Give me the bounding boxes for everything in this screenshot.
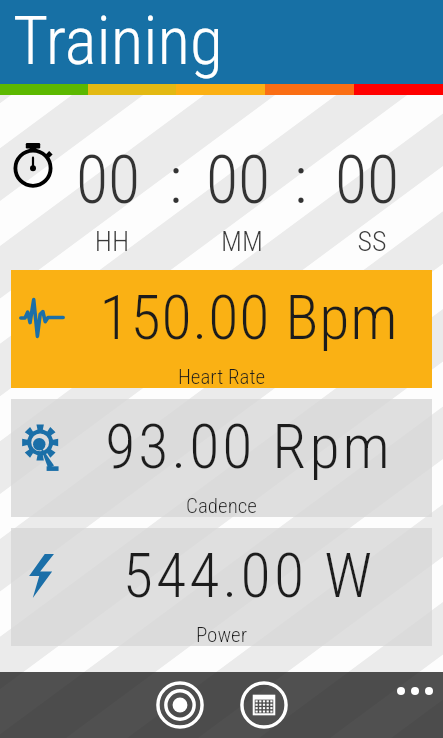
staticText: : xyxy=(294,142,308,219)
staticText: Heart Rate xyxy=(11,365,432,390)
staticText: Training xyxy=(13,1,223,80)
staticText: SS xyxy=(332,225,412,258)
staticText: 544.00 W xyxy=(65,539,433,612)
staticText: : xyxy=(169,142,183,219)
staticText: HH xyxy=(72,225,152,258)
staticText: 00 xyxy=(335,142,400,219)
staticText: 93.00 Rpm xyxy=(65,410,433,483)
button[interactable]: 93.00 Rpm xyxy=(11,399,432,517)
button[interactable]: Start recording xyxy=(151,676,209,734)
button[interactable]: Calendar xyxy=(235,676,293,734)
staticText: Power xyxy=(11,623,432,648)
button[interactable]: 544.00 W xyxy=(11,528,432,646)
button[interactable]: More options xyxy=(387,672,443,710)
button[interactable]: 150.00 Bpm xyxy=(11,270,432,388)
staticText: 00 xyxy=(206,142,271,219)
staticText: MM xyxy=(202,225,282,258)
staticText: 150.00 Bpm xyxy=(65,281,433,354)
staticText: 00 xyxy=(76,142,141,219)
staticText: Cadence xyxy=(11,494,432,519)
